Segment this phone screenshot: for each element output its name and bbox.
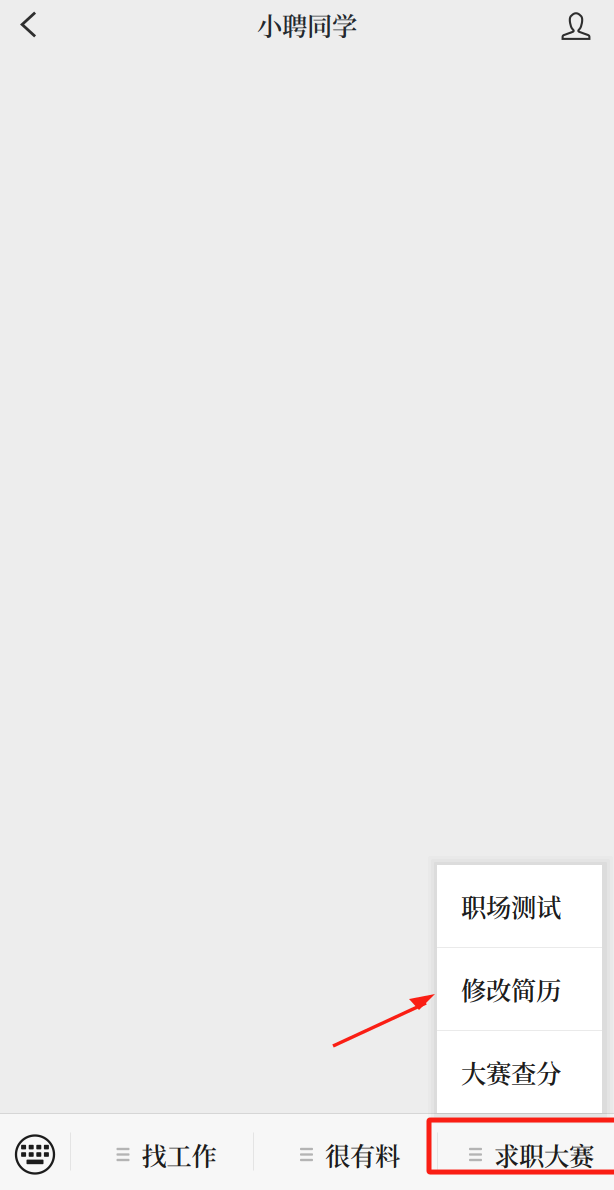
button[interactable]: 求职大赛 [437,1119,614,1190]
staticText: 求职大赛 [494,1136,594,1173]
button[interactable]: 很有料 [253,1119,437,1190]
staticText: 小聘同学 [257,6,357,43]
staticText: 职场测试 [461,888,561,924]
button[interactable]: Back [0,0,57,49]
staticText: 很有料 [325,1136,400,1173]
button[interactable]: 修改简历 [437,948,602,1030]
staticText: 修改简历 [461,971,561,1007]
staticText: 找工作 [141,1136,216,1173]
button[interactable]: 大赛查分 [437,1031,602,1113]
staticText: 大赛查分 [461,1054,561,1090]
button[interactable]: Keyboard [0,1119,70,1190]
button[interactable]: Contacts [538,1,614,47]
button[interactable]: 找工作 [70,1119,253,1190]
button[interactable]: 职场测试 [437,865,602,947]
